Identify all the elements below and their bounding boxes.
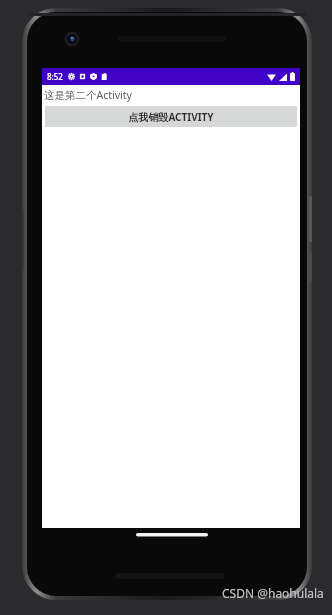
button[interactable]: 点我销毁ACTIVITY (45, 106, 297, 127)
staticText: 8:52 (47, 71, 63, 82)
staticText: 这是第二个Activity (44, 88, 132, 102)
staticText: 点我销毁ACTIVITY (128, 110, 214, 124)
staticText: CSDN @haohulala (222, 585, 324, 601)
